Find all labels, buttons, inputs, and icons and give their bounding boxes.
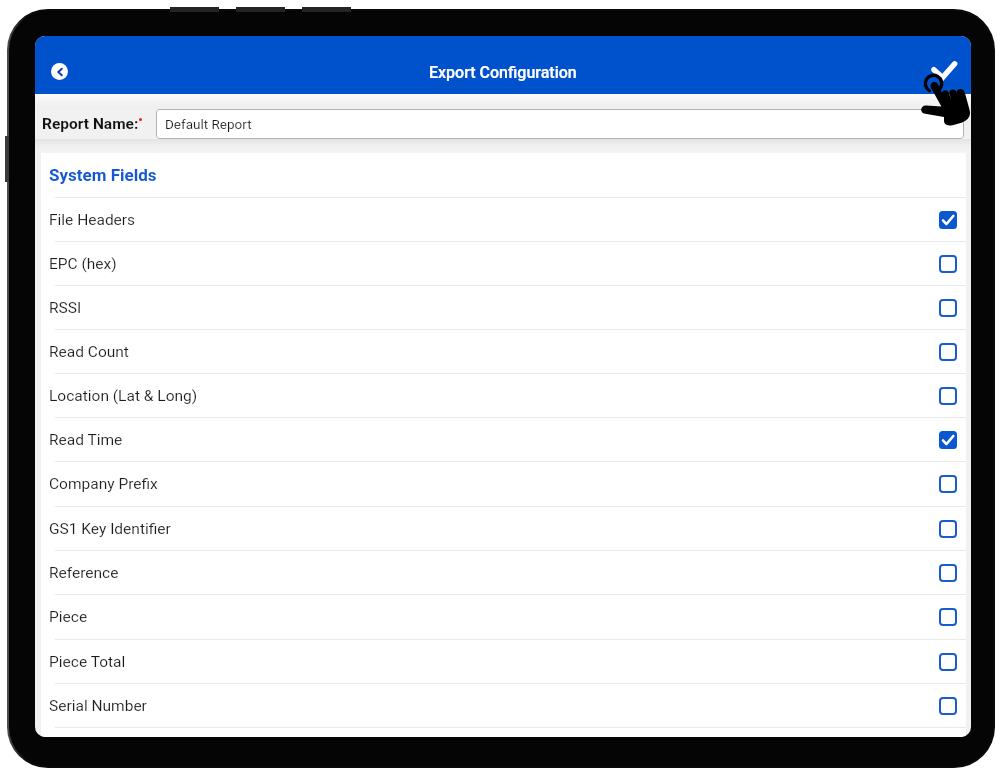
button[interactable]: Serial Number [41, 684, 966, 727]
button[interactable]: GS1 Key Identifier [41, 507, 966, 550]
button[interactable]: Company Prefix [41, 462, 966, 506]
staticText: System Fields [49, 165, 157, 185]
staticText: Reference [49, 564, 119, 582]
button[interactable]: File Headers [41, 198, 966, 241]
staticText: Read Count [49, 343, 129, 361]
staticText: Export Configuration [429, 63, 577, 82]
staticText: Location (Lat & Long) [49, 387, 198, 405]
button[interactable]: Read Time [41, 418, 966, 461]
button[interactable]: Piece [41, 595, 966, 639]
staticText: Serial Number [49, 697, 147, 715]
button[interactable]: EPC (hex) [41, 242, 966, 285]
staticText: Piece [49, 608, 88, 626]
button[interactable]: Location (Lat & Long) [41, 374, 966, 417]
button[interactable]: Default Report [156, 109, 964, 139]
staticText: Default Report [165, 116, 252, 132]
staticText: RSSI [49, 299, 82, 317]
staticText: Piece Total [49, 653, 126, 671]
button[interactable]: Piece Total [41, 640, 966, 683]
button[interactable]: RSSI [41, 286, 966, 329]
staticText: File Headers [49, 211, 136, 229]
button[interactable]: Save [912, 45, 956, 85]
button[interactable]: Back [51, 63, 68, 80]
staticText: GS1 Key Identifier [49, 520, 171, 538]
staticText: EPC (hex) [49, 255, 117, 273]
staticText: Report Name: [42, 115, 139, 133]
button[interactable]: Read Count [41, 330, 966, 373]
button[interactable]: Reference [41, 551, 966, 594]
staticText: Read Time [49, 431, 123, 449]
staticText: Company Prefix [49, 475, 158, 493]
